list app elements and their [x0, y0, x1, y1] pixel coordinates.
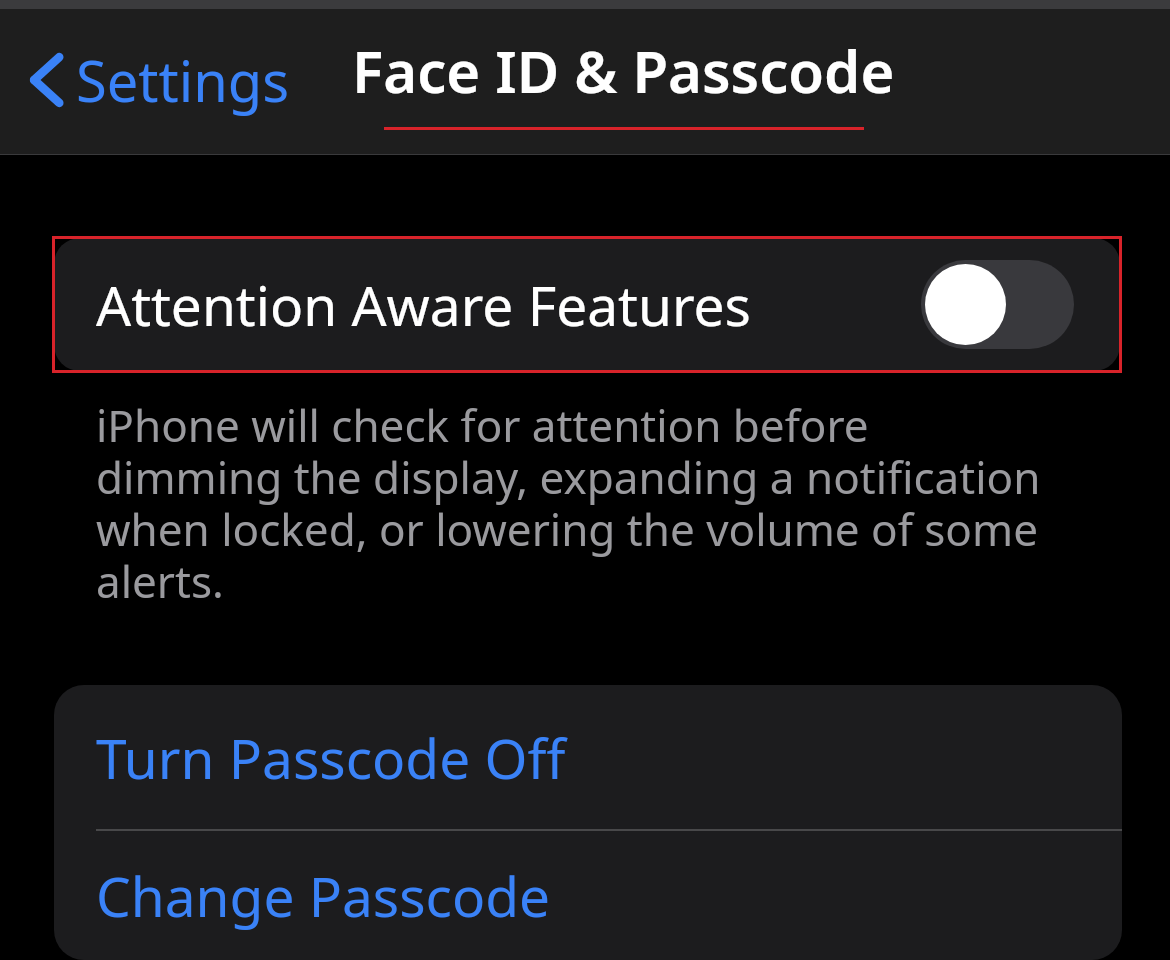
other: Back [28, 54, 62, 106]
button[interactable]: Attention Aware Features toggle [921, 260, 1074, 349]
staticText: Attention Aware Features [96, 267, 921, 342]
staticText: Face ID & Passcode [352, 31, 895, 110]
staticText: Turn Passcode Off [96, 720, 566, 795]
button[interactable]: Change Passcode [54, 831, 1122, 960]
button[interactable]: Back [22, 36, 300, 124]
staticText: Settings [76, 42, 290, 118]
staticText: Change Passcode [96, 858, 551, 933]
staticText: iPhone will check for attention before d… [96, 395, 1060, 611]
button[interactable]: Attention Aware Features [54, 238, 1120, 371]
button[interactable]: Turn Passcode Off [54, 685, 1122, 829]
